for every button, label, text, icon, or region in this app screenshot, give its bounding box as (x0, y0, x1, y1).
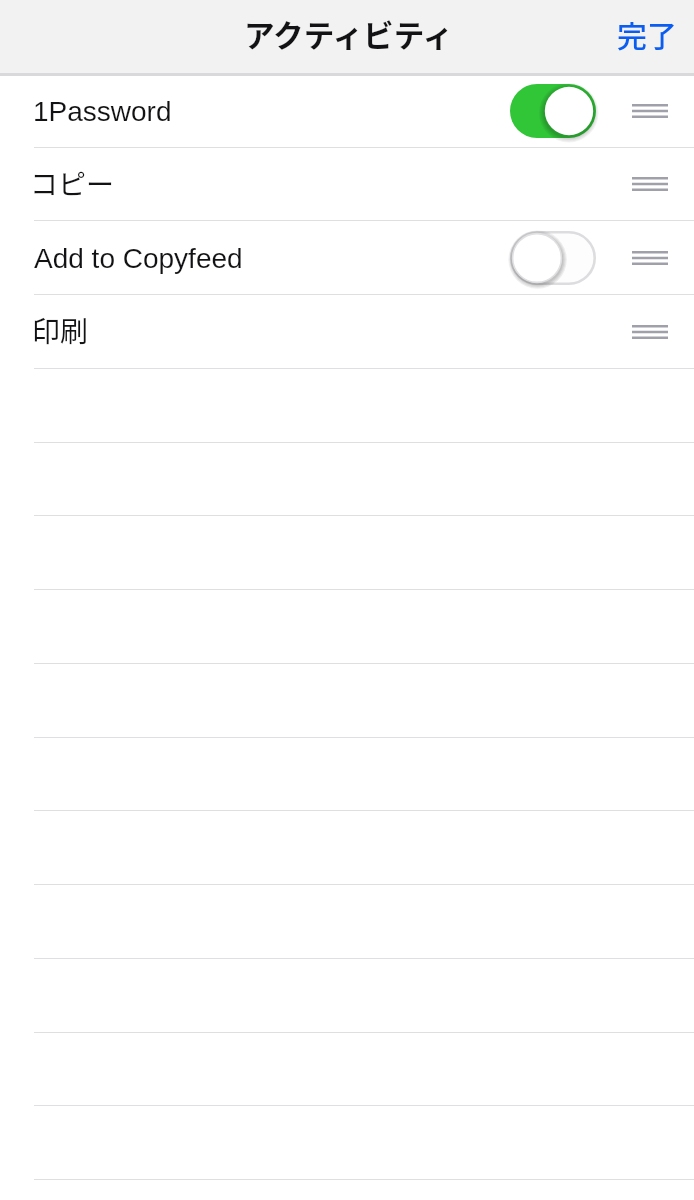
button[interactable]: 1Password (0, 74, 694, 148)
button[interactable]: Reorder (626, 92, 674, 130)
button[interactable]: Reorder (626, 165, 674, 203)
staticText: 印刷 (32, 310, 89, 351)
button[interactable]: 印刷 (0, 295, 694, 369)
staticText: アクティビティ (244, 12, 453, 56)
staticText: コピー (30, 163, 115, 204)
button[interactable]: コピー (0, 147, 694, 221)
button[interactable]: Toggle on (510, 84, 596, 138)
button[interactable]: Add to Copyfeed (0, 221, 694, 295)
staticText: 完了 (617, 12, 677, 55)
button[interactable]: Reorder (626, 239, 674, 277)
staticText: Add to Copyfeed (34, 243, 243, 274)
button[interactable]: Reorder (626, 313, 674, 351)
button[interactable]: Toggle off (510, 231, 596, 285)
button[interactable]: 完了 (591, 2, 694, 65)
staticText: 1Password (33, 96, 172, 127)
